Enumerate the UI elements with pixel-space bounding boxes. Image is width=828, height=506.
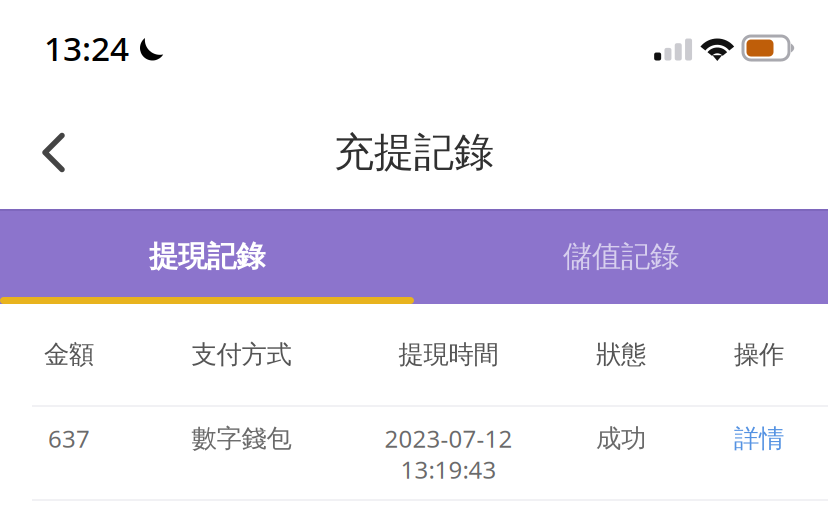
button[interactable]: Back (0, 102, 95, 202)
staticText: 2023-07-12 (384, 423, 512, 454)
staticText: 成功 (596, 423, 646, 454)
staticText: 13:24 (44, 26, 129, 70)
staticText: 充提記錄 (334, 128, 494, 177)
staticText: 提現時間 (398, 339, 498, 370)
staticText: 637 (48, 423, 90, 454)
button[interactable]: 提現記錄 (0, 209, 414, 304)
staticText: 操作 (734, 339, 784, 370)
button[interactable]: 詳情 (690, 423, 828, 454)
staticText: 詳情 (734, 423, 784, 454)
staticText: 狀態 (596, 339, 646, 370)
staticText: 提現記錄 (149, 238, 265, 274)
staticText: 13:19:43 (400, 454, 496, 485)
button[interactable]: 儲值記錄 (414, 209, 828, 304)
staticText: 金額 (44, 339, 94, 370)
staticText: 支付方式 (191, 339, 291, 370)
staticText: 數字錢包 (191, 423, 291, 454)
staticText: 儲值記錄 (563, 238, 679, 274)
